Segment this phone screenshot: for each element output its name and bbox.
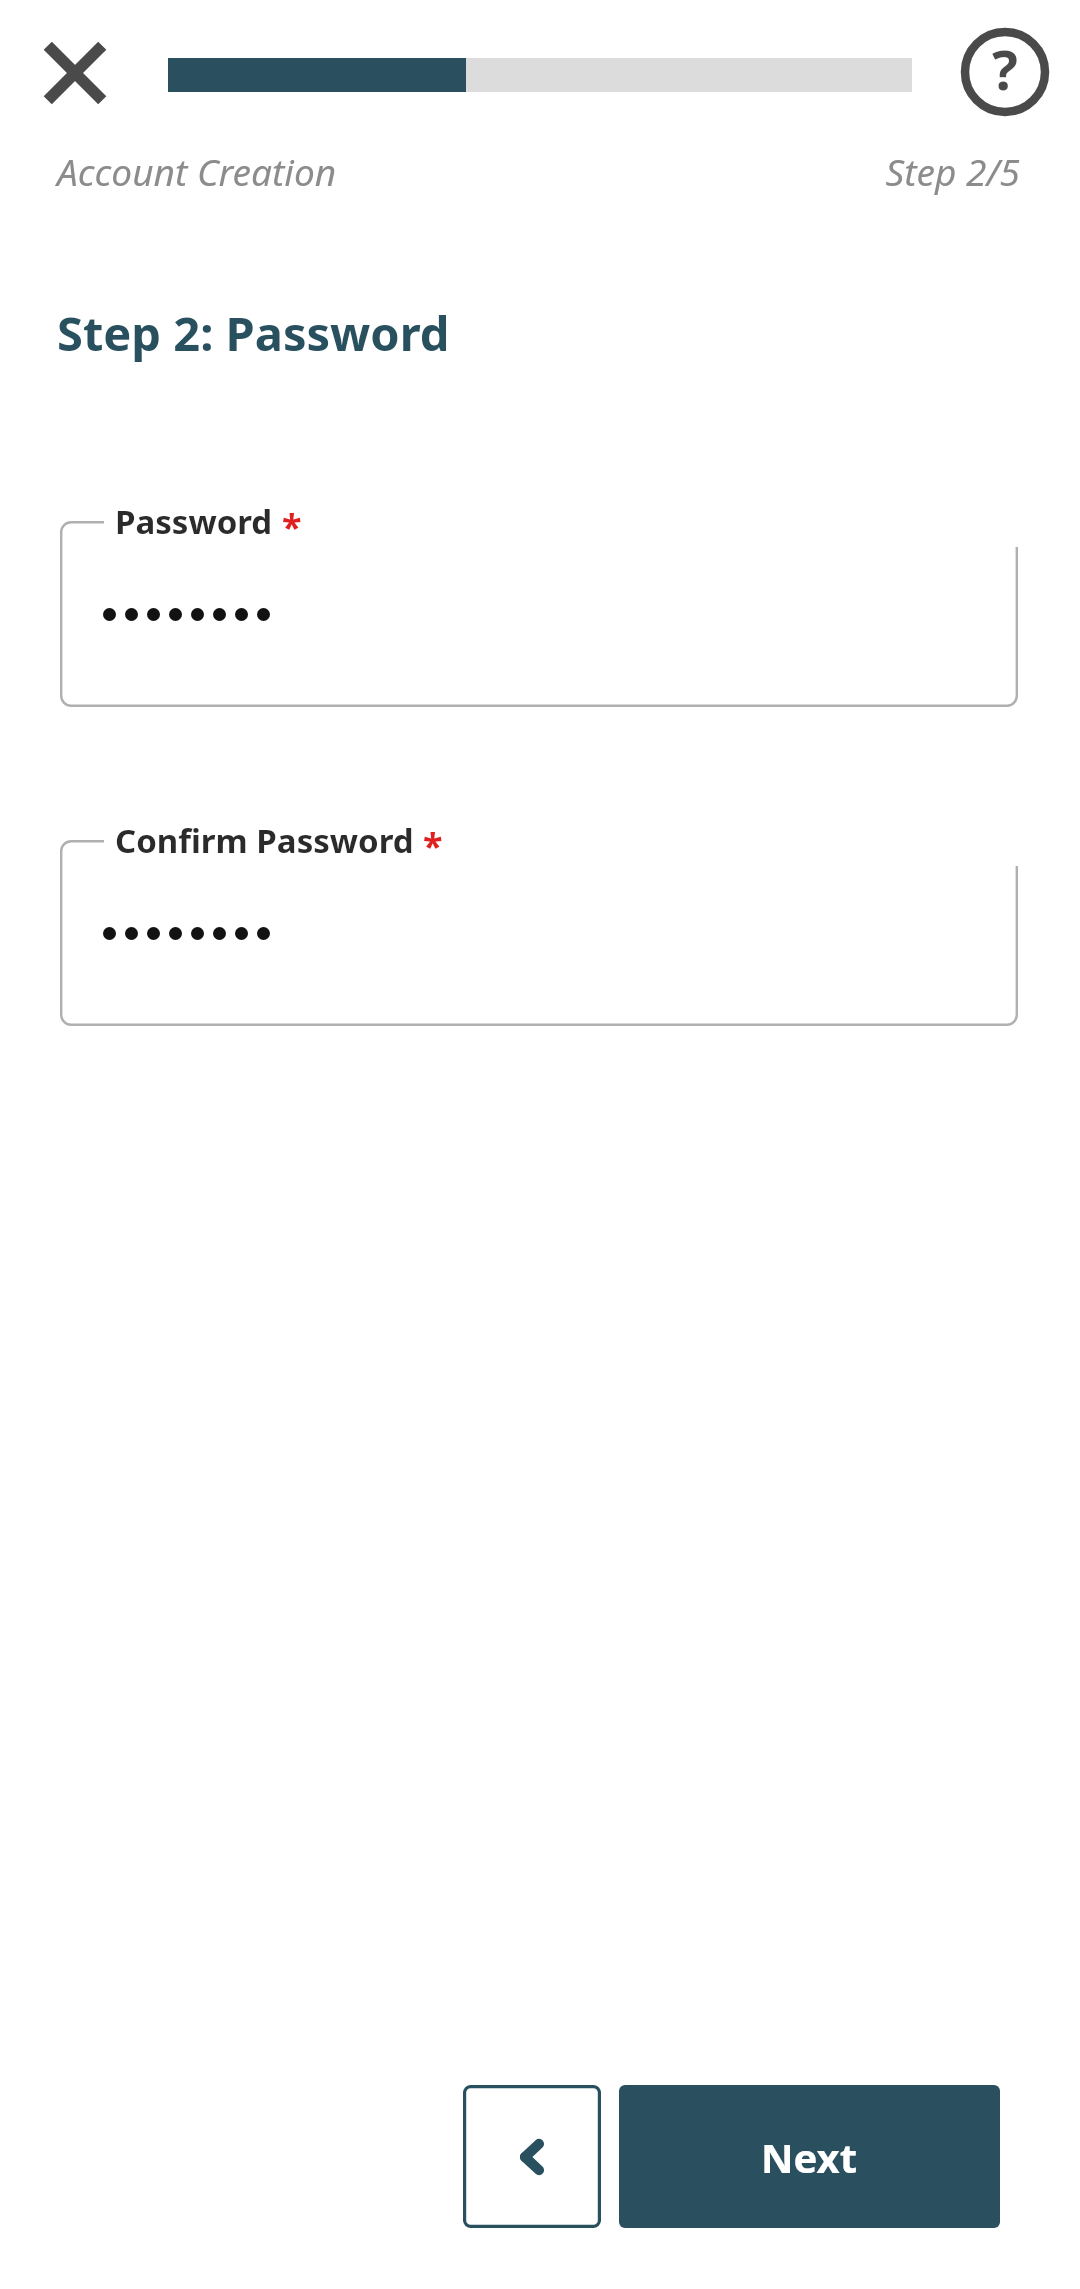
staticText: Next [761,2130,858,2184]
staticText: ? [992,32,1018,106]
button[interactable]: Next [619,2085,1000,2228]
button[interactable]: Help [930,0,1080,146]
button[interactable] [60,521,1018,707]
staticText: * [282,502,302,551]
staticText: Step 2/5 [620,146,1020,196]
button[interactable] [60,840,1018,1026]
button[interactable]: Close [0,0,150,146]
staticText: * [423,821,443,870]
staticText: Password [115,499,273,544]
button[interactable]: Back [463,2085,601,2228]
staticText: Step 2: Password [57,301,450,365]
staticText: Confirm Password [115,818,414,863]
staticText: Account Creation [57,146,337,196]
